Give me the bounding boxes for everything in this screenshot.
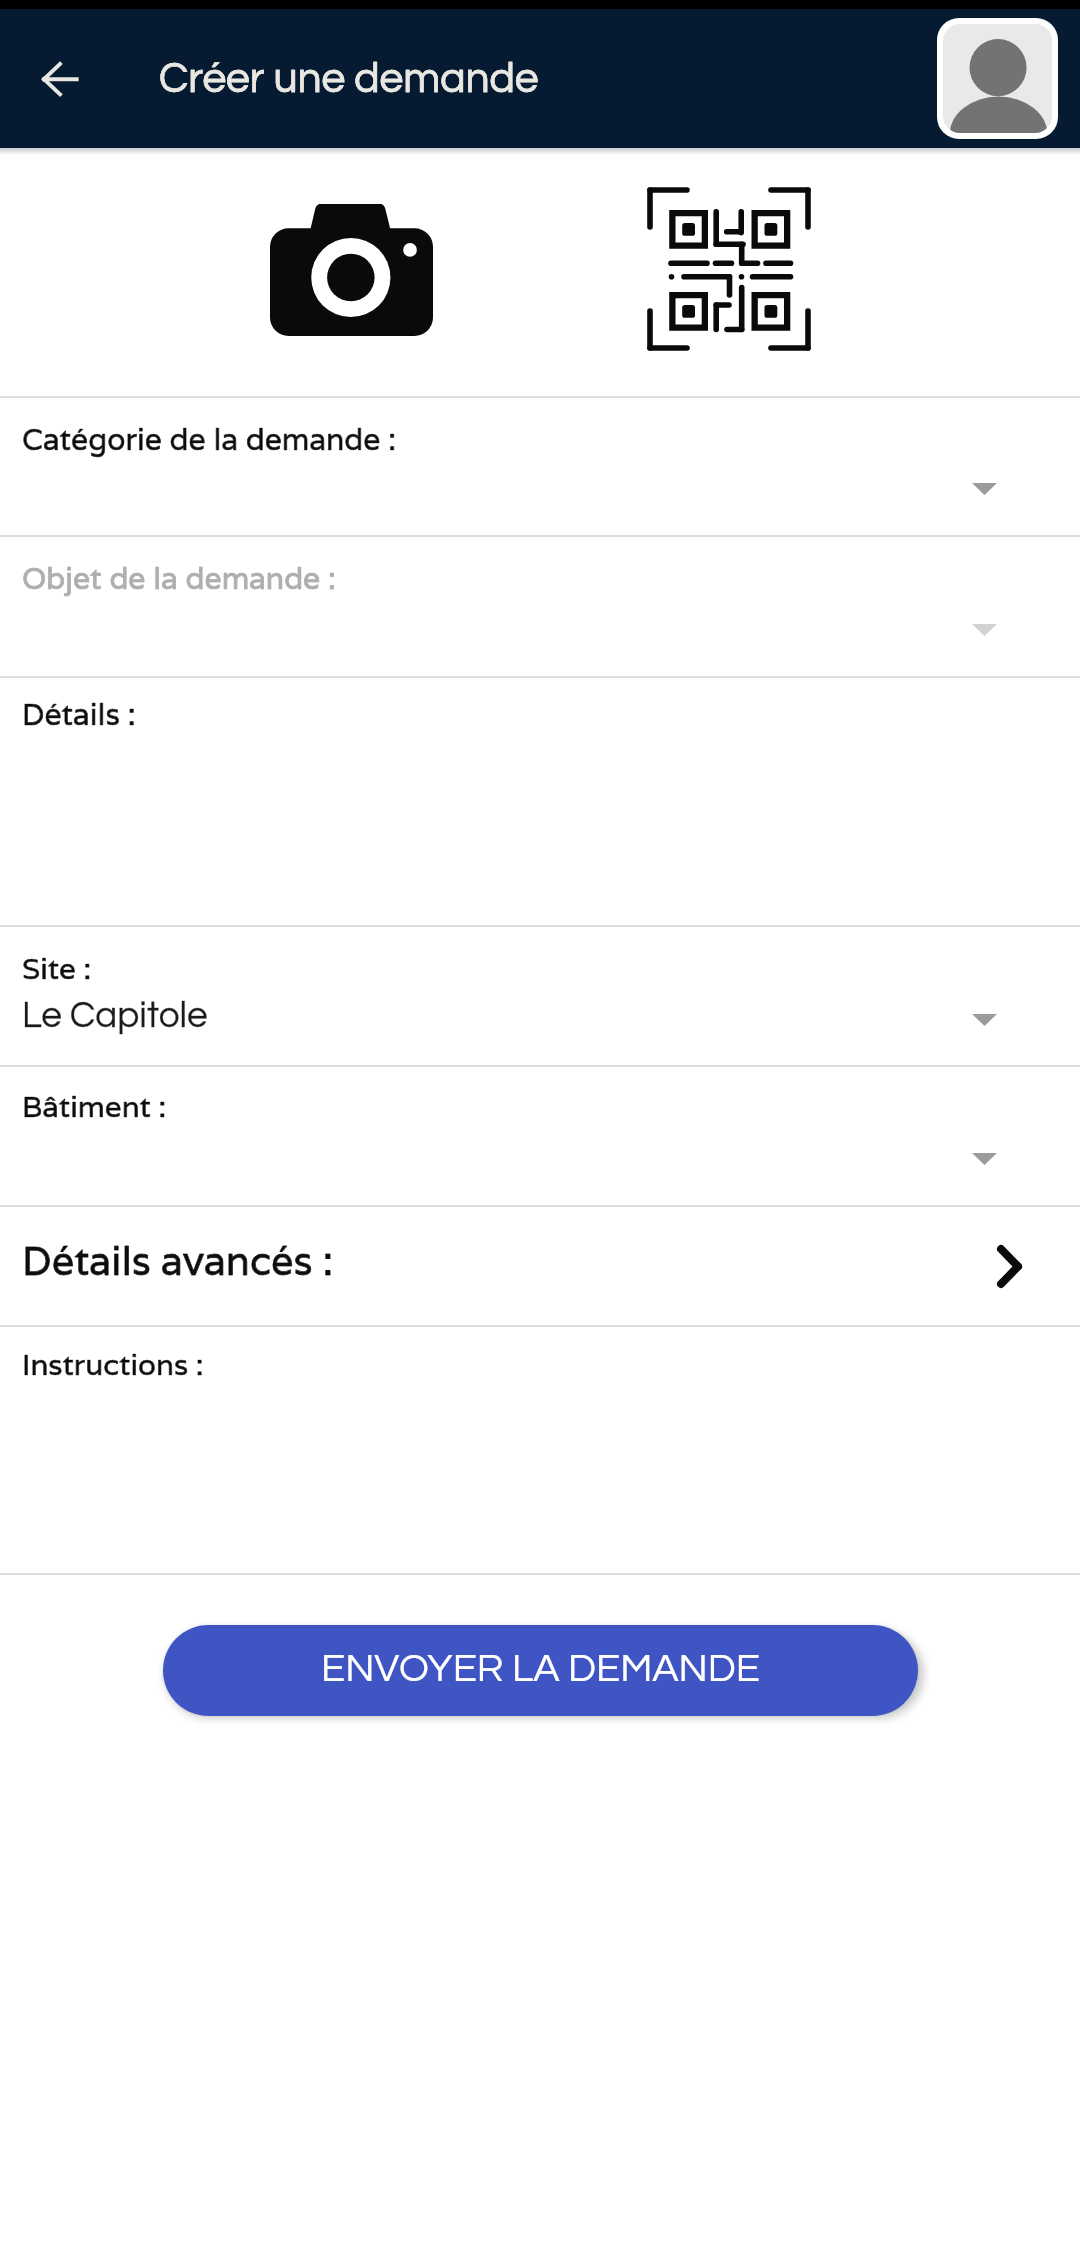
- button[interactable]: Profile: [943, 24, 1052, 133]
- button[interactable]: Scan QR code: [645, 185, 815, 355]
- staticText: Détails :: [22, 695, 136, 734]
- button[interactable]: Instructions :: [0, 1327, 1080, 1573]
- staticText: Instructions :: [22, 1345, 204, 1383]
- button[interactable]: Objet de la demande :: [0, 537, 1080, 676]
- button[interactable]: Site :: [0, 927, 1080, 1065]
- button[interactable]: Bâtiment :: [0, 1067, 1080, 1205]
- staticText: Bâtiment :: [22, 1087, 167, 1125]
- staticText: Bâtiment :: [22, 1087, 167, 1125]
- staticText: Créer une demande: [159, 57, 539, 101]
- staticText: Catégorie de la demande :: [22, 420, 396, 459]
- staticText: Site :: [22, 949, 92, 987]
- button[interactable]: Détails avancés :: [0, 1207, 1080, 1325]
- staticText: Objet de la demande :: [22, 559, 336, 598]
- staticText: Le Capitole: [22, 997, 208, 1035]
- staticText: Détails avancés :: [22, 1235, 334, 1286]
- staticText: Instructions :: [22, 1345, 204, 1383]
- staticText: Objet de la demande :: [22, 559, 336, 598]
- button[interactable]: ENVOYER LA DEMANDE: [163, 1625, 918, 1716]
- button[interactable]: Back: [25, 42, 97, 114]
- staticText: ENVOYER LA DEMANDE: [321, 1648, 760, 1689]
- button[interactable]: Catégorie de la demande :: [0, 398, 1080, 535]
- staticText: Détails :: [22, 695, 136, 734]
- button[interactable]: Take photo: [270, 204, 433, 336]
- staticText: Catégorie de la demande :: [22, 420, 396, 459]
- staticText: Site :: [22, 949, 92, 987]
- staticText: Le Capitole: [22, 997, 208, 1035]
- button[interactable]: Détails :: [0, 678, 1080, 925]
- staticText: Détails avancés :: [22, 1235, 334, 1286]
- staticText: Créer une demande: [159, 57, 539, 101]
